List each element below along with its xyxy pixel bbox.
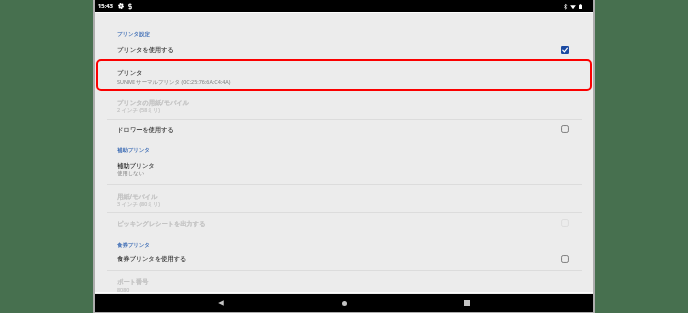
button[interactable] [95, 60, 593, 90]
button[interactable] [95, 140, 593, 160]
staticText: 2 インチ (58ミリ) [117, 106, 160, 113]
staticText: プリンタ [117, 69, 143, 77]
button[interactable]: Recent apps [447, 294, 487, 312]
button[interactable]: Back [201, 294, 241, 312]
button[interactable] [95, 119, 593, 136]
button[interactable] [95, 186, 593, 213]
staticText: 補助プリンタ [117, 147, 150, 154]
staticText: 使用しない [117, 170, 145, 177]
staticText: ドロワーを使用する [117, 126, 174, 134]
button[interactable] [95, 253, 593, 270]
button[interactable] [95, 25, 593, 45]
staticText: 3 インチ (80ミリ) [117, 200, 160, 207]
button[interactable]: Toggle [559, 217, 571, 229]
staticText: 用紙/モバイル [117, 192, 158, 200]
button[interactable] [95, 92, 593, 118]
staticText: 食券プリンタを使用する [117, 255, 187, 263]
button[interactable] [95, 271, 593, 294]
button[interactable]: Toggle [559, 253, 571, 265]
staticText: 補助プリンタ [117, 162, 155, 170]
staticText: プリンタ設定 [117, 31, 150, 38]
staticText: 15:43 [98, 2, 113, 10]
button[interactable] [95, 45, 593, 59]
staticText: 8080 [117, 286, 130, 293]
button[interactable]: Toggle [559, 44, 571, 56]
button[interactable]: Home [324, 294, 364, 312]
staticText: ピッキングレシートを出力する [117, 220, 206, 228]
button[interactable] [95, 237, 593, 253]
staticText: プリンタを使用する [117, 46, 174, 54]
staticText: ポート番号 [117, 278, 149, 286]
button[interactable] [95, 160, 593, 185]
button[interactable]: Toggle [559, 123, 571, 135]
staticText: プリンタの用紙/モバイル [117, 98, 189, 106]
button[interactable] [95, 214, 593, 236]
staticText: 食券プリンタ [117, 242, 150, 249]
staticText: SUNMI サーマルプリンタ (0C:25:76:6A:C4:4A) [117, 78, 231, 85]
